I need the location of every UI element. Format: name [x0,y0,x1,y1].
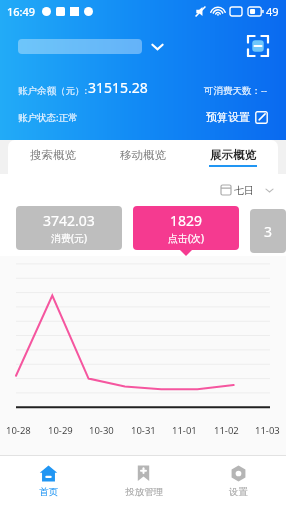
staticText: 10-30 [89,424,114,437]
staticText: 点击(次) [168,231,204,245]
button[interactable]: 移动概览 [98,140,188,174]
staticText: 首页 [39,486,58,498]
button[interactable]: 展示概览 [188,140,278,174]
staticText: 10-28 [6,424,31,437]
staticText: 七日 [234,184,254,197]
staticText: 1829 [170,211,203,230]
staticText: 展示概览 [210,148,256,162]
button[interactable]: 投放管理 [96,456,191,505]
staticText: 搜索概览 [30,148,76,162]
staticText: 可消费天数：-- [204,84,268,97]
button[interactable] [18,33,240,60]
staticText: 投放管理 [125,486,163,498]
staticText: 账户余额（元）: [18,84,88,97]
staticText: 3742.03 [43,211,95,230]
staticText: 11-03 [255,424,280,437]
button[interactable]: 预算设置 [206,108,268,126]
button[interactable]: 设置 [191,456,286,505]
staticText: 10-31 [131,424,156,437]
staticText: 49 [266,4,279,19]
button[interactable]: 3 [250,209,286,253]
button[interactable]: Scan code [240,28,276,64]
staticText: 31515.28 [88,78,148,97]
button[interactable]: 首页 [0,456,96,505]
button[interactable]: 3742.03 [16,206,122,250]
staticText: 11-02 [214,424,239,437]
staticText: 设置 [229,486,248,498]
staticText: 账户状态:正常 [18,111,78,124]
button[interactable]: 七日 [216,179,278,201]
staticText: 预算设置 [206,110,250,124]
staticText: 10-29 [48,424,73,437]
staticText: 3 [264,222,273,241]
staticText: 消费(元) [51,231,87,245]
button[interactable]: 1829 [133,206,239,250]
staticText: 移动概览 [120,148,166,162]
button[interactable]: 搜索概览 [8,140,98,174]
staticText: 16:49 [7,4,36,19]
staticText: 11-01 [172,424,197,437]
